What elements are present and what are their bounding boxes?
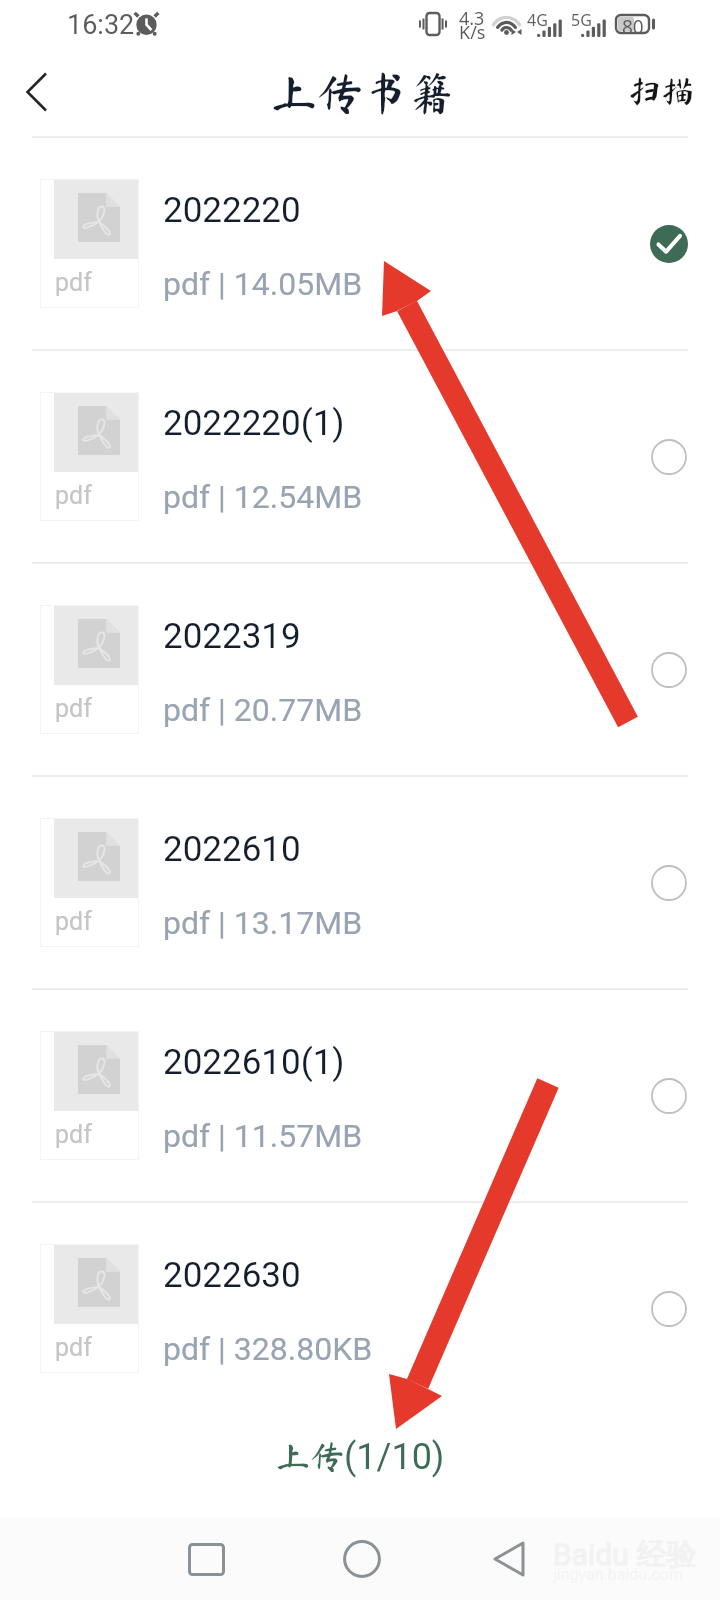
staticText: 2022220(1) [163, 403, 345, 444]
button[interactable]: pdf [0, 351, 720, 562]
button[interactable]: Home [322, 1518, 402, 1600]
button[interactable]: pdf [0, 138, 720, 349]
staticText: 16:32 [67, 9, 135, 41]
staticText: pdf [55, 907, 92, 936]
staticText: 5G [571, 9, 592, 31]
staticText: K/s [459, 20, 486, 45]
button[interactable]: Recents [166, 1518, 246, 1600]
staticText: 扫描 [628, 74, 694, 107]
button[interactable]: Select [650, 1077, 688, 1115]
button[interactable]: Select [650, 651, 688, 689]
staticText: 4.3 [459, 6, 485, 31]
button[interactable]: pdf [0, 990, 720, 1201]
button[interactable]: pdf [0, 777, 720, 988]
staticText: pdf [55, 268, 92, 297]
staticText: 上传书籍 [271, 70, 455, 116]
staticText: pdf | 328.80KB [163, 1330, 373, 1368]
staticText: 2022319 [163, 616, 301, 657]
staticText: pdf | 12.54MB [163, 478, 363, 516]
staticText: pdf [55, 481, 92, 510]
button[interactable]: Select [650, 438, 688, 476]
staticText: pdf | 11.57MB [163, 1117, 363, 1155]
button[interactable]: Select [650, 1290, 688, 1328]
button[interactable]: 扫描 [604, 54, 720, 119]
staticText: pdf | 14.05MB [163, 265, 363, 303]
staticText: 80 [622, 14, 644, 34]
staticText: 上传 [276, 1439, 344, 1473]
button[interactable]: Select [650, 864, 688, 902]
button[interactable]: Back [2, 54, 70, 136]
staticText: 2022630 [163, 1255, 301, 1296]
staticText: pdf [55, 1120, 92, 1149]
button[interactable]: pdf [0, 564, 720, 775]
staticText: 4G [527, 9, 548, 31]
button[interactable]: pdf [0, 1203, 720, 1414]
staticText: 2022610 [163, 829, 301, 870]
staticText: 2022610(1) [163, 1042, 345, 1083]
staticText: pdf [55, 1333, 92, 1362]
staticText: (1/10) [344, 1436, 445, 1478]
staticText: 2022220 [163, 190, 301, 231]
button[interactable]: 上传 [254, 1428, 467, 1486]
button[interactable]: Back [469, 1518, 549, 1600]
staticText: pdf [55, 694, 92, 723]
staticText: pdf | 20.77MB [163, 691, 363, 729]
staticText: Baidu 经验 [553, 1536, 697, 1574]
staticText: pdf | 13.17MB [163, 904, 363, 942]
button[interactable]: Selected [650, 225, 688, 263]
